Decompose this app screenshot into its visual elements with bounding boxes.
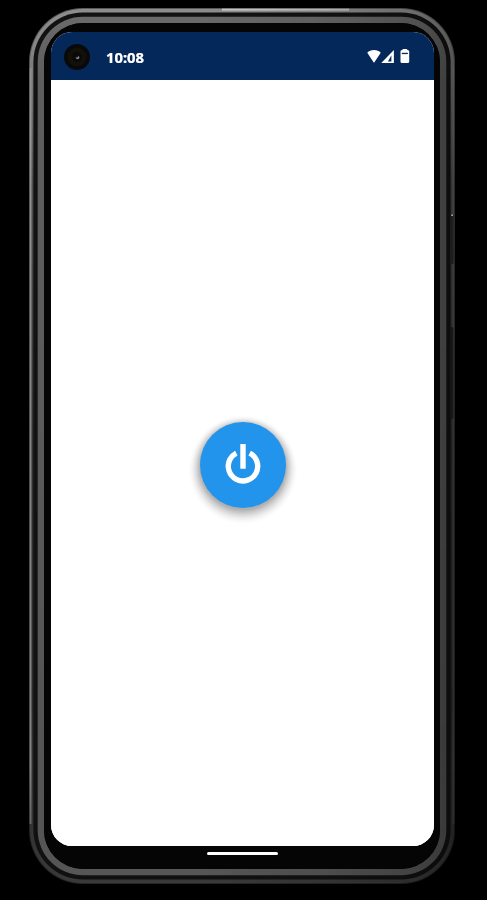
staticText: 10:08 (106, 47, 145, 67)
button[interactable]: Power (200, 422, 286, 508)
